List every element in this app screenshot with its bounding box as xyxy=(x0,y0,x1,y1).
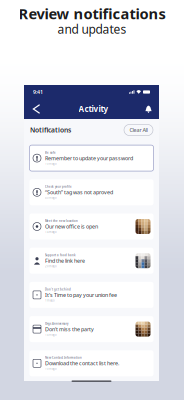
staticText: Download the contact list here. xyxy=(45,360,119,367)
staticText: Don't miss the party xyxy=(45,326,94,333)
staticText: Find the link here xyxy=(45,257,85,264)
button[interactable]: Orgs Anniversary xyxy=(24,312,159,346)
staticText: Activity xyxy=(78,104,108,114)
button[interactable]: Check your profile xyxy=(24,175,159,209)
staticText: 14m ago xyxy=(45,333,57,336)
staticText: and updates xyxy=(57,21,126,37)
staticText: Clear All xyxy=(129,126,147,134)
button[interactable]: Back xyxy=(30,102,43,115)
staticText: Don't get behind xyxy=(45,288,71,291)
staticText: New Contact Information xyxy=(45,356,82,359)
staticText: “South” tag was not aproved xyxy=(45,189,113,196)
staticText: Support a food bank xyxy=(45,253,76,257)
staticText: 20m ago xyxy=(45,264,57,268)
staticText: Orgs Anniversary xyxy=(45,322,68,325)
staticText: Remember to update your password xyxy=(45,155,133,162)
staticText: 10m ago xyxy=(45,162,57,165)
button[interactable]: Meet the new location xyxy=(24,209,159,244)
button[interactable]: New Contact Information xyxy=(24,346,159,380)
button[interactable]: Support a food bank xyxy=(24,244,159,278)
button[interactable]: Notifications xyxy=(144,104,153,113)
staticText: 40m ago xyxy=(45,196,57,199)
staticText: 1m ago xyxy=(45,299,55,302)
staticText: Check your profile xyxy=(45,185,72,188)
staticText: 14m ago xyxy=(45,230,57,234)
button[interactable]: Be safe xyxy=(24,141,159,175)
button[interactable]: Clear All xyxy=(124,124,153,136)
staticText: 9:41 xyxy=(33,88,43,96)
staticText: Our new office is open xyxy=(45,223,98,230)
staticText: 10m ago xyxy=(45,367,57,370)
button[interactable]: Don't get behind xyxy=(24,278,159,312)
staticText: It's Time to pay your union fee xyxy=(45,291,117,298)
staticText: Notifications xyxy=(30,126,71,134)
staticText: Meet the new location xyxy=(45,219,78,223)
staticText: Review notifications xyxy=(18,4,165,23)
staticText: Be safe xyxy=(45,151,56,154)
